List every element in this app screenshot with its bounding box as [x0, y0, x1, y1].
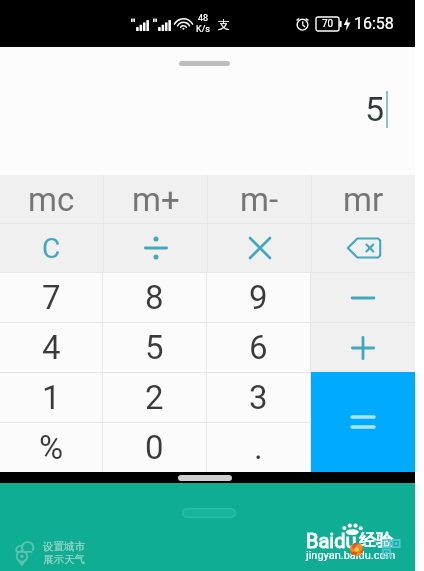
button[interactable]: mr — [312, 175, 415, 223]
staticText: mr — [343, 180, 384, 219]
staticText: 展示天气 — [43, 553, 85, 566]
button[interactable]: . — [207, 423, 310, 472]
button[interactable]: mc — [0, 175, 103, 223]
button[interactable]: 2 — [103, 373, 206, 422]
staticText: Baidu — [306, 529, 357, 552]
button[interactable]: 1 — [0, 373, 102, 422]
staticText: 1 — [42, 378, 61, 417]
staticText: 6 — [249, 328, 268, 367]
staticText: % — [39, 428, 64, 467]
button[interactable]: 0 — [103, 423, 206, 472]
button[interactable]: Plus — [311, 323, 415, 372]
staticText: 支 — [218, 17, 230, 32]
staticText: 0 — [145, 428, 164, 467]
staticText: m- — [240, 180, 279, 219]
staticText: 3 — [249, 378, 268, 417]
staticText: jingyan.baidu.com — [306, 549, 396, 562]
staticText: 9 — [249, 278, 268, 317]
button[interactable]: 9 — [207, 273, 310, 322]
button[interactable]: Delete — [312, 224, 415, 272]
button[interactable]: 3 — [207, 373, 310, 422]
staticText: 8 — [145, 278, 164, 317]
staticText: 4 — [42, 328, 61, 367]
button[interactable]: % — [0, 423, 102, 472]
button[interactable]: Divide — [104, 224, 207, 272]
staticText: mc — [28, 180, 75, 219]
staticText: C — [42, 232, 61, 265]
button[interactable]: 5 — [103, 323, 206, 372]
staticText: 5 — [145, 328, 164, 367]
staticText: 设置城市 — [43, 540, 85, 553]
staticText: 48 — [198, 13, 209, 24]
button[interactable]: 6 — [207, 323, 310, 372]
staticText: 7 — [42, 278, 61, 317]
button[interactable]: Equals — [311, 372, 415, 472]
staticText: K/s — [196, 24, 211, 35]
button[interactable]: Minus — [311, 273, 415, 322]
staticText: 经验 — [359, 530, 393, 551]
button[interactable]: 8 — [103, 273, 206, 322]
button[interactable]: Multiply — [208, 224, 311, 272]
button[interactable]: C — [0, 224, 103, 272]
staticText: 16:58 — [354, 14, 394, 33]
staticText: . — [254, 428, 263, 467]
button[interactable]: 7 — [0, 273, 102, 322]
staticText: 5 — [365, 89, 385, 129]
button[interactable]: m+ — [104, 175, 207, 223]
staticText: 70 — [322, 18, 334, 30]
button[interactable]: 4 — [0, 323, 102, 372]
button[interactable]: m- — [208, 175, 311, 223]
button[interactable]: 设置城市 — [14, 540, 85, 566]
staticText: 2 — [145, 378, 164, 417]
staticText: m+ — [132, 180, 180, 219]
